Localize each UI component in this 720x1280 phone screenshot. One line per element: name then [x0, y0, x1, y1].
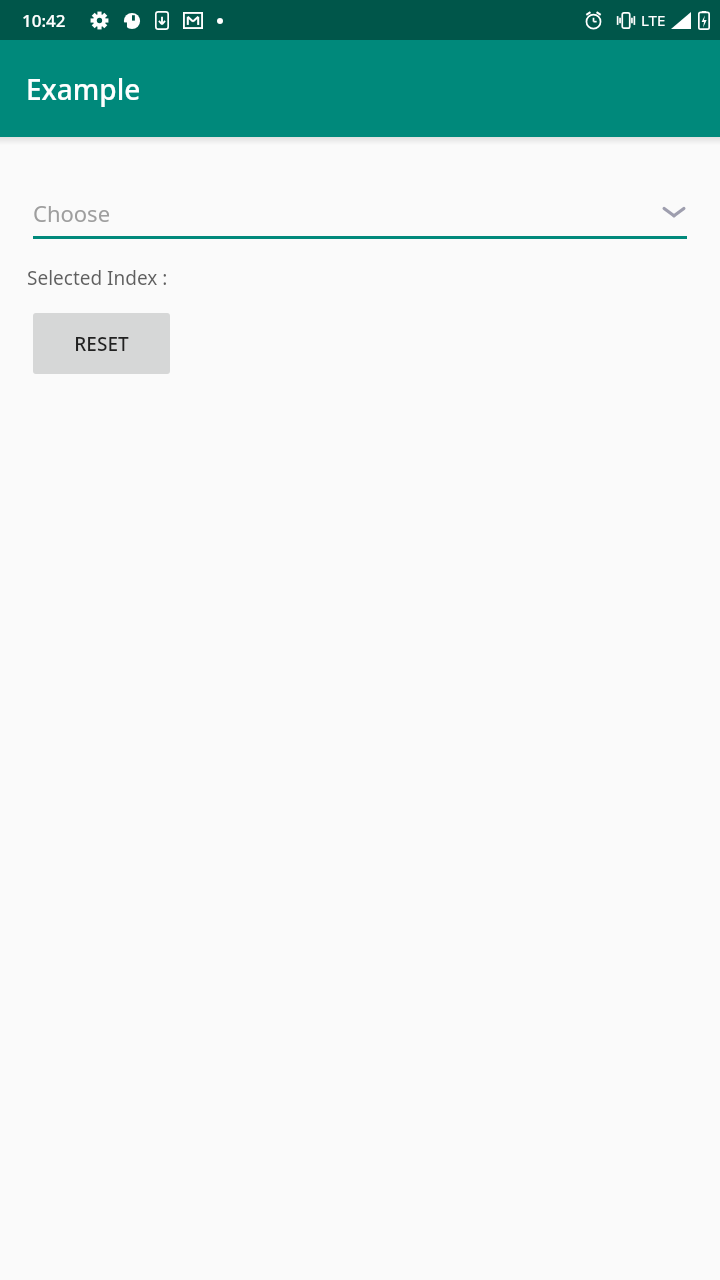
staticText: Selected Index : — [27, 265, 168, 291]
staticText: RESET — [74, 331, 129, 357]
button[interactable]: RESET — [33, 313, 170, 374]
staticText: 10:42 — [22, 9, 66, 32]
staticText: LTE — [641, 10, 666, 30]
button[interactable]: Choose — [33, 193, 687, 239]
staticText: Choose — [33, 198, 111, 228]
staticText: Example — [26, 70, 141, 108]
